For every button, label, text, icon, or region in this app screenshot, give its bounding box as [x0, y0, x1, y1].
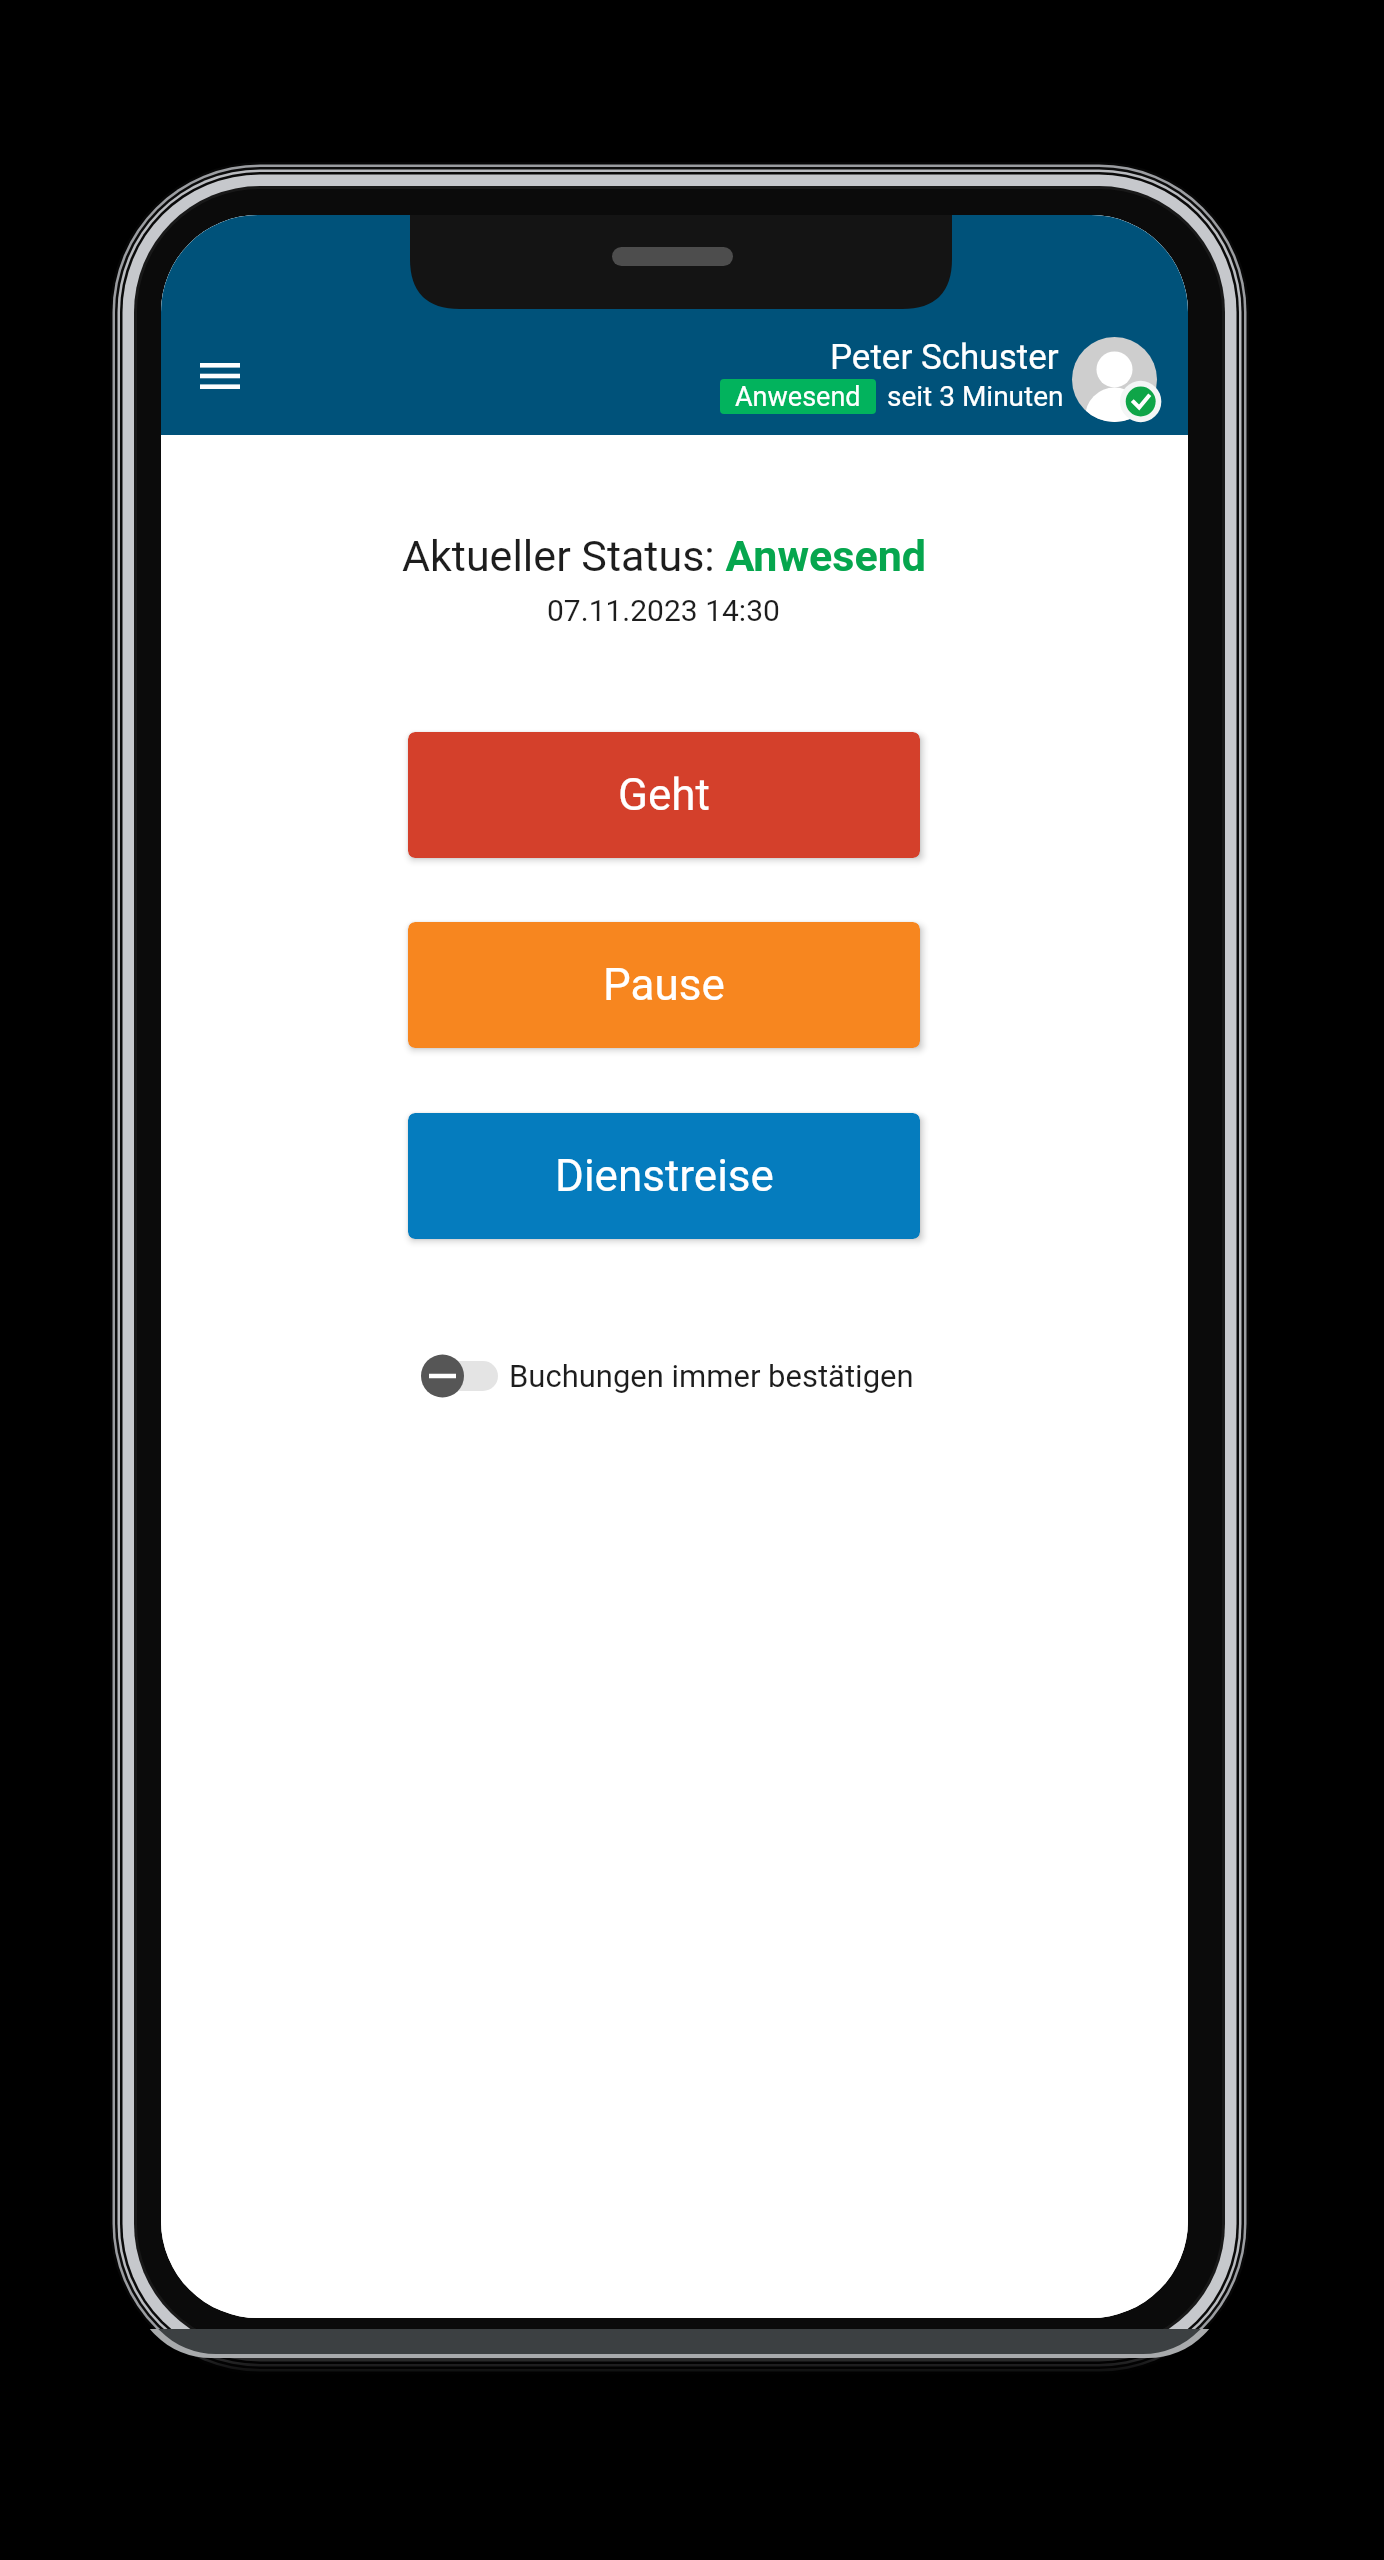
staticText: Peter Schuster: [830, 337, 1059, 378]
button[interactable]: Open navigation menu: [175, 335, 265, 417]
button[interactable]: Pause: [408, 922, 920, 1048]
staticText: seit 3 Minuten: [887, 380, 1064, 413]
button[interactable]: Dienstreise: [408, 1113, 920, 1239]
staticText: 07.11.2023 14:30: [547, 593, 780, 628]
button[interactable]: Buchungen immer bestätigen: [417, 1353, 1166, 1399]
staticText: Anwesend: [735, 381, 861, 413]
staticText: Dienstreise: [555, 1150, 774, 1202]
staticText: Pause: [603, 959, 725, 1011]
staticText: Aktueller Status: Anwesend: [402, 531, 926, 581]
staticText: Buchungen immer bestätigen: [509, 1358, 914, 1394]
button[interactable]: Peter Schuster: [720, 337, 1157, 422]
button[interactable]: Geht: [408, 732, 920, 858]
staticText: Geht: [618, 769, 710, 821]
